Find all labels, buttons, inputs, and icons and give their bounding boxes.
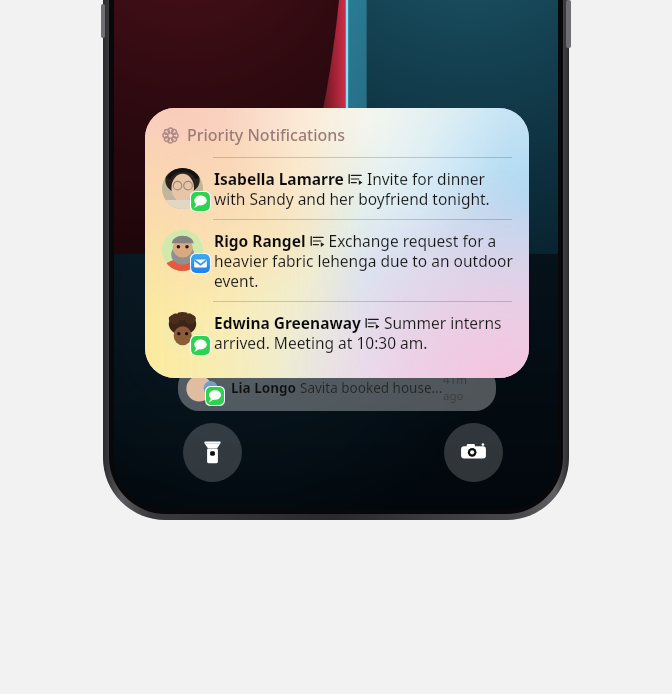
button[interactable]: Isabella Lamarre * Invite for dinner wit… — [145, 158, 529, 219]
staticText: Savita booked house... — [300, 379, 443, 397]
button[interactable]: Rigo Rangel * Exchange request for a hea… — [145, 220, 529, 301]
staticText: Isabella Lamarre * Invite for dinner wit… — [214, 168, 513, 209]
staticText: Priority Notifications — [187, 124, 346, 146]
staticText: 41m ago — [443, 372, 484, 404]
button[interactable]: Edwina Greenaway * Summer interns arrive… — [145, 302, 529, 363]
staticText: Edwina Greenaway * Summer interns arrive… — [214, 312, 513, 353]
staticText: Rigo Rangel * Exchange request for a hea… — [214, 230, 513, 291]
button[interactable]: Flashlight — [183, 423, 242, 482]
button[interactable]: Camera — [444, 423, 503, 482]
staticText: Lia Longo — [231, 379, 300, 397]
button[interactable]: Priority Notifications — [145, 108, 529, 378]
button[interactable]: Lia Longo — [178, 365, 496, 411]
